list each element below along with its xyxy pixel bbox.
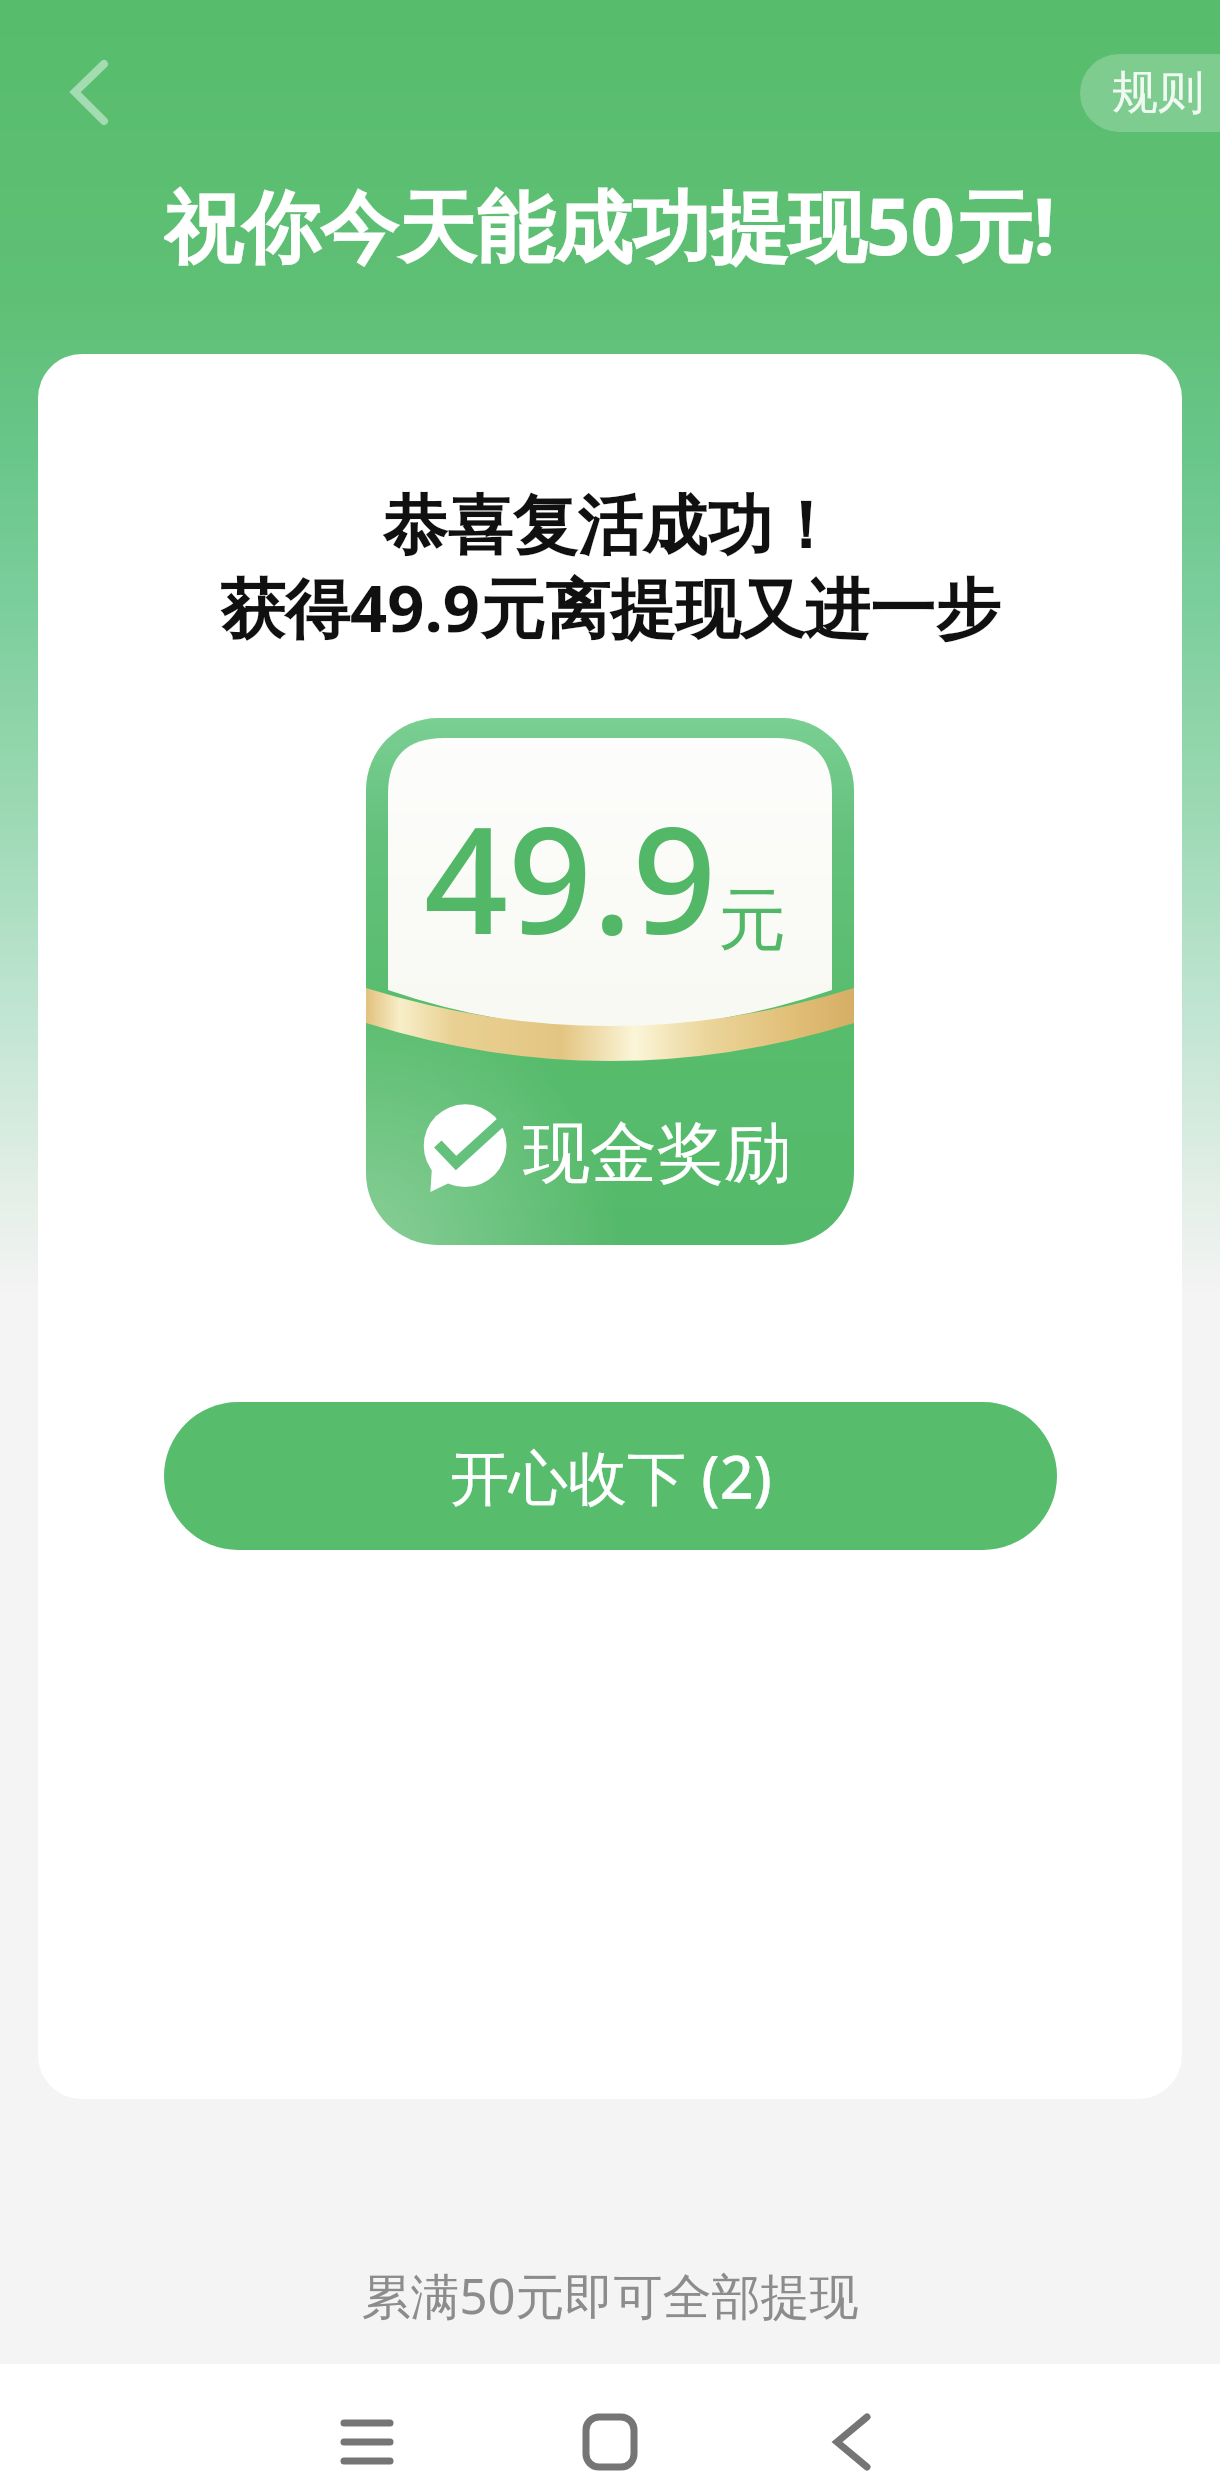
button[interactable]: Back xyxy=(772,2364,932,2480)
staticText: 元 xyxy=(718,878,786,964)
staticText: 祝你今天能成功提现50元! xyxy=(164,172,1056,268)
button[interactable]: Back xyxy=(38,38,142,142)
button[interactable]: Home xyxy=(530,2364,690,2480)
staticText: 累满50元即可全部提现 xyxy=(0,2262,1220,2329)
button[interactable]: Recent apps xyxy=(287,2364,447,2480)
button[interactable]: 规则 xyxy=(1080,54,1220,132)
staticText: 开心收下 (2) xyxy=(450,1436,772,1517)
staticText: 49.9 xyxy=(424,777,717,977)
staticText: 规则 xyxy=(1112,64,1204,122)
button[interactable]: 开心收下 (2) xyxy=(164,1402,1057,1550)
staticText: 现金奖励 xyxy=(523,1111,791,1195)
staticText: 恭喜复活成功！ 获得49.9元离提现又进一步 xyxy=(220,485,1000,651)
